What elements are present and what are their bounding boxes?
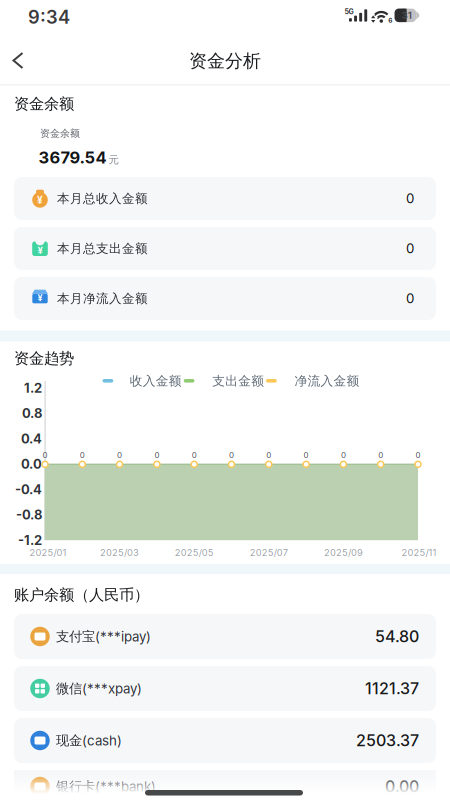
staticText: 0.8	[22, 405, 42, 421]
staticText: 0	[415, 450, 420, 460]
staticText: ¥	[37, 194, 43, 206]
staticText: 0	[117, 450, 122, 460]
staticText: 2025/05	[175, 547, 214, 558]
staticText: 支出金额	[212, 373, 264, 389]
staticText: 0	[406, 190, 414, 207]
staticText: 收入金额	[130, 373, 182, 389]
staticText: 本月总收入金额	[57, 191, 148, 206]
staticText: 0.0	[21, 456, 42, 472]
staticText: 0.4	[21, 431, 42, 447]
button[interactable]: Back	[0, 44, 44, 79]
staticText: 2025/07	[250, 547, 288, 558]
staticText: 账户余额（人民币）	[14, 585, 149, 605]
staticText: 0.00	[385, 777, 419, 796]
staticText: 2503.37	[356, 731, 419, 750]
staticText: 2025/03	[100, 547, 139, 558]
staticText: 微信(***xpay)	[56, 680, 142, 697]
staticText: 0	[406, 290, 414, 307]
button[interactable]: ¥	[14, 177, 436, 220]
staticText: 9:34	[28, 6, 70, 28]
staticText: 资金余额	[14, 94, 74, 114]
staticText: 1.2	[24, 380, 42, 396]
staticText: 资金余额	[40, 127, 80, 140]
staticText: 0	[154, 450, 159, 460]
staticText: 净流入金额	[294, 373, 359, 389]
staticText: 5G	[344, 8, 353, 16]
staticText: 支付宝(***ipay)	[56, 628, 151, 645]
staticText: 0	[80, 450, 85, 460]
button[interactable]: 银行卡(***bank)	[14, 764, 436, 800]
staticText: 0	[266, 450, 271, 460]
staticText: 0	[378, 450, 383, 460]
staticText: 资金分析	[189, 50, 261, 72]
staticText: 54.80	[375, 627, 419, 646]
staticText: 0	[304, 450, 309, 460]
staticText: 本月总支出金额	[57, 241, 148, 256]
button[interactable]: ¥	[14, 227, 436, 270]
button[interactable]: 现金(cash)	[14, 718, 436, 763]
staticText: 2025/09	[324, 547, 363, 558]
staticText: 现金(cash)	[56, 732, 122, 749]
staticText: 本月净流入金额	[57, 291, 148, 306]
staticText: 银行卡(***bank)	[56, 778, 156, 795]
staticText: 6	[388, 17, 392, 24]
staticText: 3679.54	[38, 147, 106, 167]
staticText: -1.2	[18, 532, 42, 548]
staticText: 0	[406, 240, 414, 257]
staticText: 资金趋势	[14, 349, 74, 368]
button[interactable]: ¥	[14, 277, 436, 320]
staticText: 0	[341, 450, 346, 460]
staticText: 2025/11	[401, 547, 436, 558]
staticText: 1121.37	[365, 679, 419, 698]
staticText: 0	[229, 450, 234, 460]
staticText: ¥	[37, 244, 42, 256]
staticText: -0.8	[16, 507, 42, 523]
staticText: ¥	[37, 293, 42, 304]
staticText: 0	[42, 450, 47, 460]
staticText: 2025/01	[29, 547, 66, 558]
staticText: -0.4	[15, 482, 42, 497]
staticText: 0	[192, 450, 197, 460]
staticText: 31	[402, 10, 412, 21]
staticText: 元	[108, 153, 119, 166]
button[interactable]: 支付宝(***ipay)	[14, 614, 436, 659]
button[interactable]: 微信(***xpay)	[14, 666, 436, 711]
